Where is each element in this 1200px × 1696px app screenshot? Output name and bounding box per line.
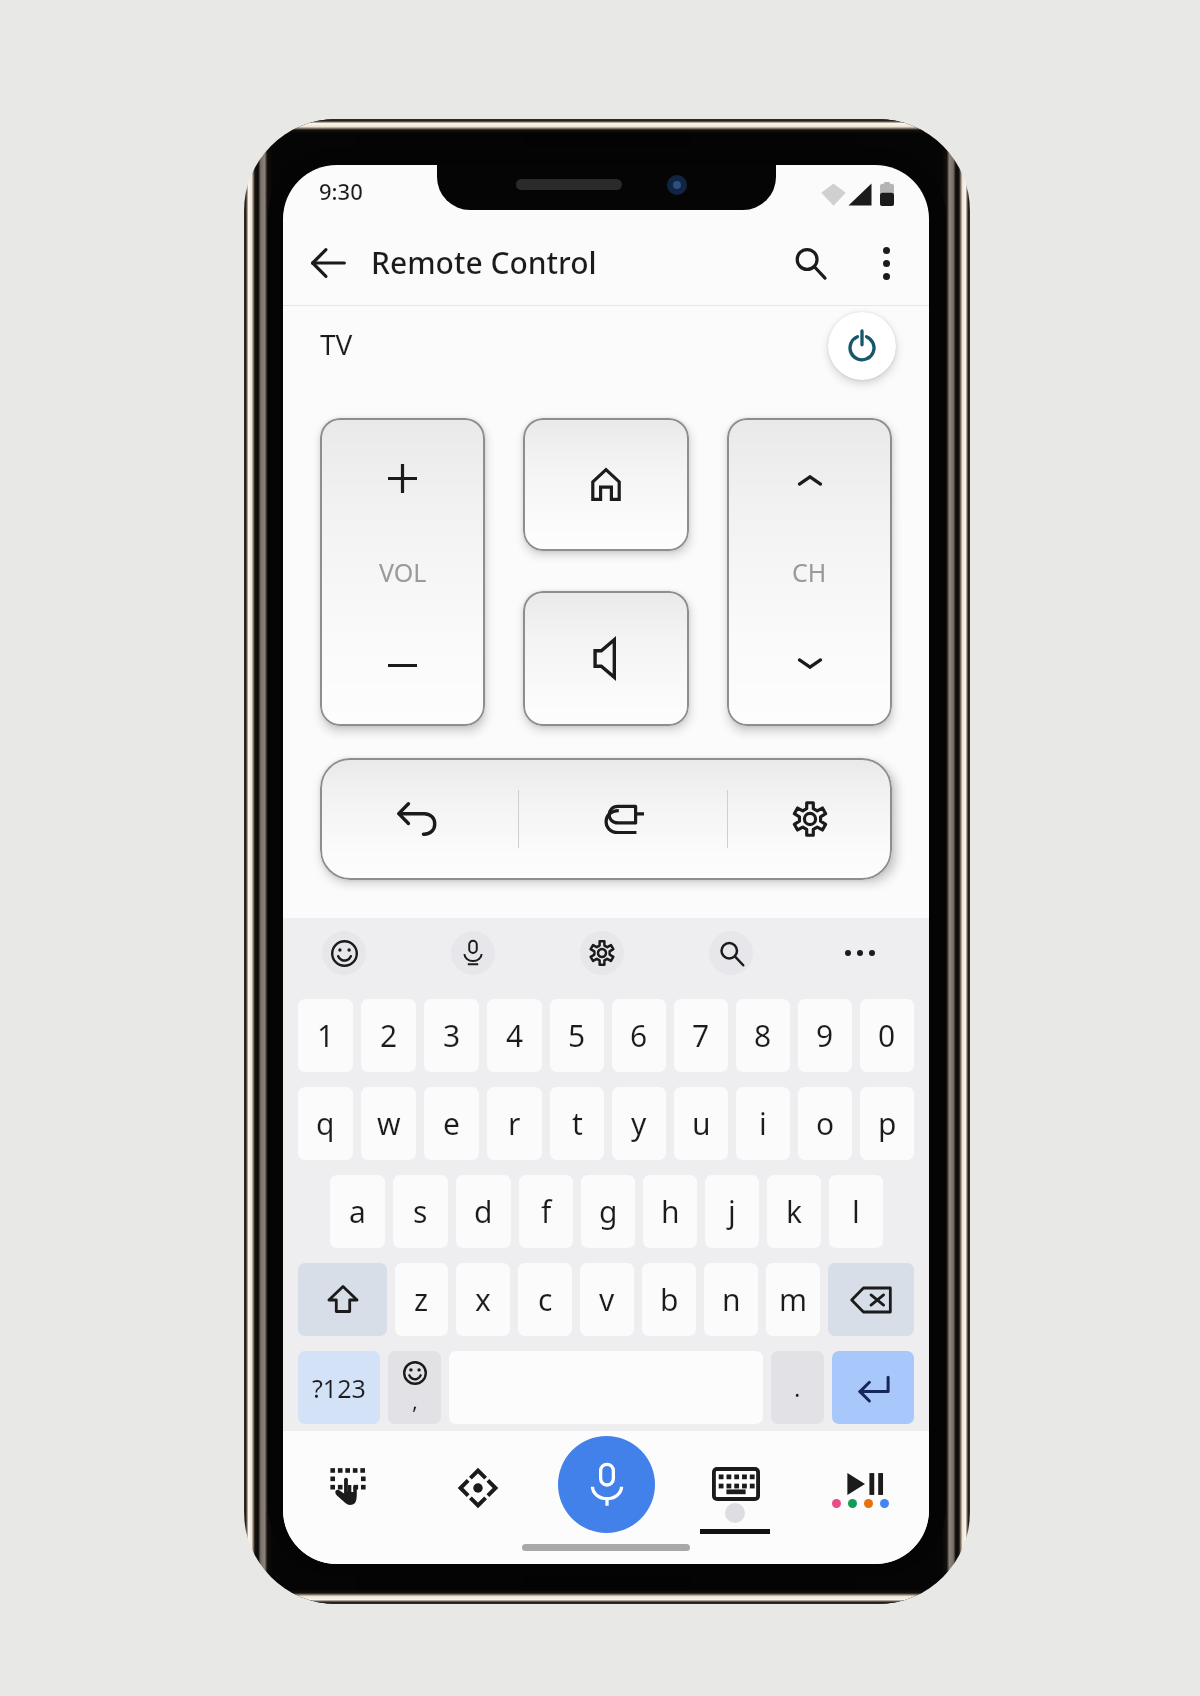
staticText: k: [786, 1191, 803, 1232]
button[interactable]: Back: [299, 234, 357, 292]
button[interactable]: e: [424, 1087, 479, 1160]
button[interactable]: Backspace: [828, 1263, 914, 1336]
button[interactable]: Power: [828, 312, 896, 380]
staticText: 0: [878, 1015, 896, 1056]
staticText: .: [794, 1371, 801, 1404]
button[interactable]: t: [550, 1087, 604, 1160]
button[interactable]: x: [456, 1263, 510, 1336]
button[interactable]: 9: [798, 999, 852, 1072]
button[interactable]: y: [612, 1087, 666, 1160]
button[interactable]: Shift: [298, 1263, 387, 1336]
staticText: Remote Control: [371, 242, 597, 283]
staticText: 5: [568, 1015, 586, 1056]
button[interactable]: 2: [361, 999, 416, 1072]
staticText: 3: [443, 1015, 461, 1056]
button[interactable]: 7: [674, 999, 728, 1072]
button[interactable]: Back: [320, 758, 518, 880]
button[interactable]: Home: [523, 418, 689, 551]
button[interactable]: Enter: [832, 1351, 914, 1424]
button[interactable]: More options: [857, 234, 915, 292]
staticText: h: [661, 1191, 680, 1232]
button[interactable]: Emoji: [322, 931, 366, 975]
button[interactable]: p: [860, 1087, 914, 1160]
button[interactable]: h: [643, 1175, 697, 1248]
button[interactable]: z: [395, 1263, 448, 1336]
button[interactable]: 5: [550, 999, 604, 1072]
staticText: m: [779, 1279, 808, 1320]
staticText: 9:30: [319, 176, 363, 206]
button[interactable]: 1: [298, 999, 353, 1072]
button[interactable]: Voice typing: [451, 931, 495, 975]
staticText: 1: [317, 1015, 335, 1056]
button[interactable]: i: [736, 1087, 790, 1160]
button[interactable]: Mute: [523, 591, 689, 726]
button[interactable]: Settings: [728, 758, 892, 880]
button[interactable]: Channel: [727, 418, 892, 726]
button[interactable]: Keyboard: [671, 1461, 800, 1507]
button[interactable]: f: [519, 1175, 573, 1248]
staticText: j: [728, 1191, 736, 1232]
staticText: c: [538, 1279, 553, 1320]
button[interactable]: More keyboard options: [838, 931, 882, 975]
staticText: f: [541, 1191, 552, 1232]
button[interactable]: 6: [612, 999, 666, 1072]
staticText: r: [508, 1103, 521, 1144]
button[interactable]: a: [330, 1175, 385, 1248]
staticText: ,: [412, 1385, 418, 1415]
staticText: y: [631, 1103, 647, 1144]
button[interactable]: b: [642, 1263, 696, 1336]
button[interactable]: 3: [424, 999, 479, 1072]
button[interactable]: Voice input: [558, 1436, 655, 1533]
button[interactable]: q: [298, 1087, 353, 1160]
button[interactable]: j: [705, 1175, 759, 1248]
staticText: d: [474, 1191, 493, 1232]
staticText: s: [413, 1191, 428, 1232]
staticText: v: [599, 1279, 615, 1320]
staticText: a: [349, 1191, 366, 1232]
button[interactable]: Input source: [519, 758, 727, 880]
button[interactable]: 8: [736, 999, 790, 1072]
button[interactable]: u: [674, 1087, 728, 1160]
button[interactable]: 0: [860, 999, 914, 1072]
button[interactable]: g: [581, 1175, 635, 1248]
button[interactable]: ?123: [298, 1351, 380, 1424]
staticText: VOL: [379, 555, 427, 589]
staticText: CH: [792, 555, 827, 589]
staticText: i: [759, 1103, 767, 1144]
staticText: u: [692, 1103, 711, 1144]
button[interactable]: Play pause: [800, 1461, 929, 1507]
button[interactable]: Emoji and comma: [388, 1351, 441, 1424]
button[interactable]: Volume: [320, 418, 485, 726]
staticText: w: [377, 1103, 401, 1144]
button[interactable]: w: [361, 1087, 416, 1160]
staticText: b: [660, 1279, 679, 1320]
staticText: 2: [380, 1015, 398, 1056]
button[interactable]: d: [456, 1175, 511, 1248]
staticText: 4: [506, 1015, 524, 1056]
button[interactable]: Search: [709, 931, 753, 975]
button[interactable]: k: [767, 1175, 821, 1248]
staticText: ?123: [312, 1371, 366, 1405]
button[interactable]: Search: [781, 234, 839, 292]
staticText: p: [878, 1103, 897, 1144]
button[interactable]: o: [798, 1087, 852, 1160]
button[interactable]: r: [487, 1087, 542, 1160]
button[interactable]: n: [704, 1263, 758, 1336]
button[interactable]: .: [771, 1351, 824, 1424]
staticText: 6: [630, 1015, 648, 1056]
staticText: 7: [692, 1015, 710, 1056]
button[interactable]: v: [580, 1263, 634, 1336]
button[interactable]: l: [829, 1175, 883, 1248]
button[interactable]: s: [393, 1175, 448, 1248]
button[interactable]: 4: [487, 999, 542, 1072]
button[interactable]: m: [766, 1263, 820, 1336]
button[interactable]: Handwriting input: [283, 1461, 413, 1507]
staticText: o: [816, 1103, 835, 1144]
staticText: n: [722, 1279, 741, 1320]
staticText: g: [599, 1191, 618, 1232]
staticText: l: [852, 1191, 860, 1232]
button[interactable]: c: [518, 1263, 572, 1336]
button[interactable]: Keyboard settings: [580, 931, 624, 975]
button[interactable]: Direction pad: [413, 1461, 542, 1507]
